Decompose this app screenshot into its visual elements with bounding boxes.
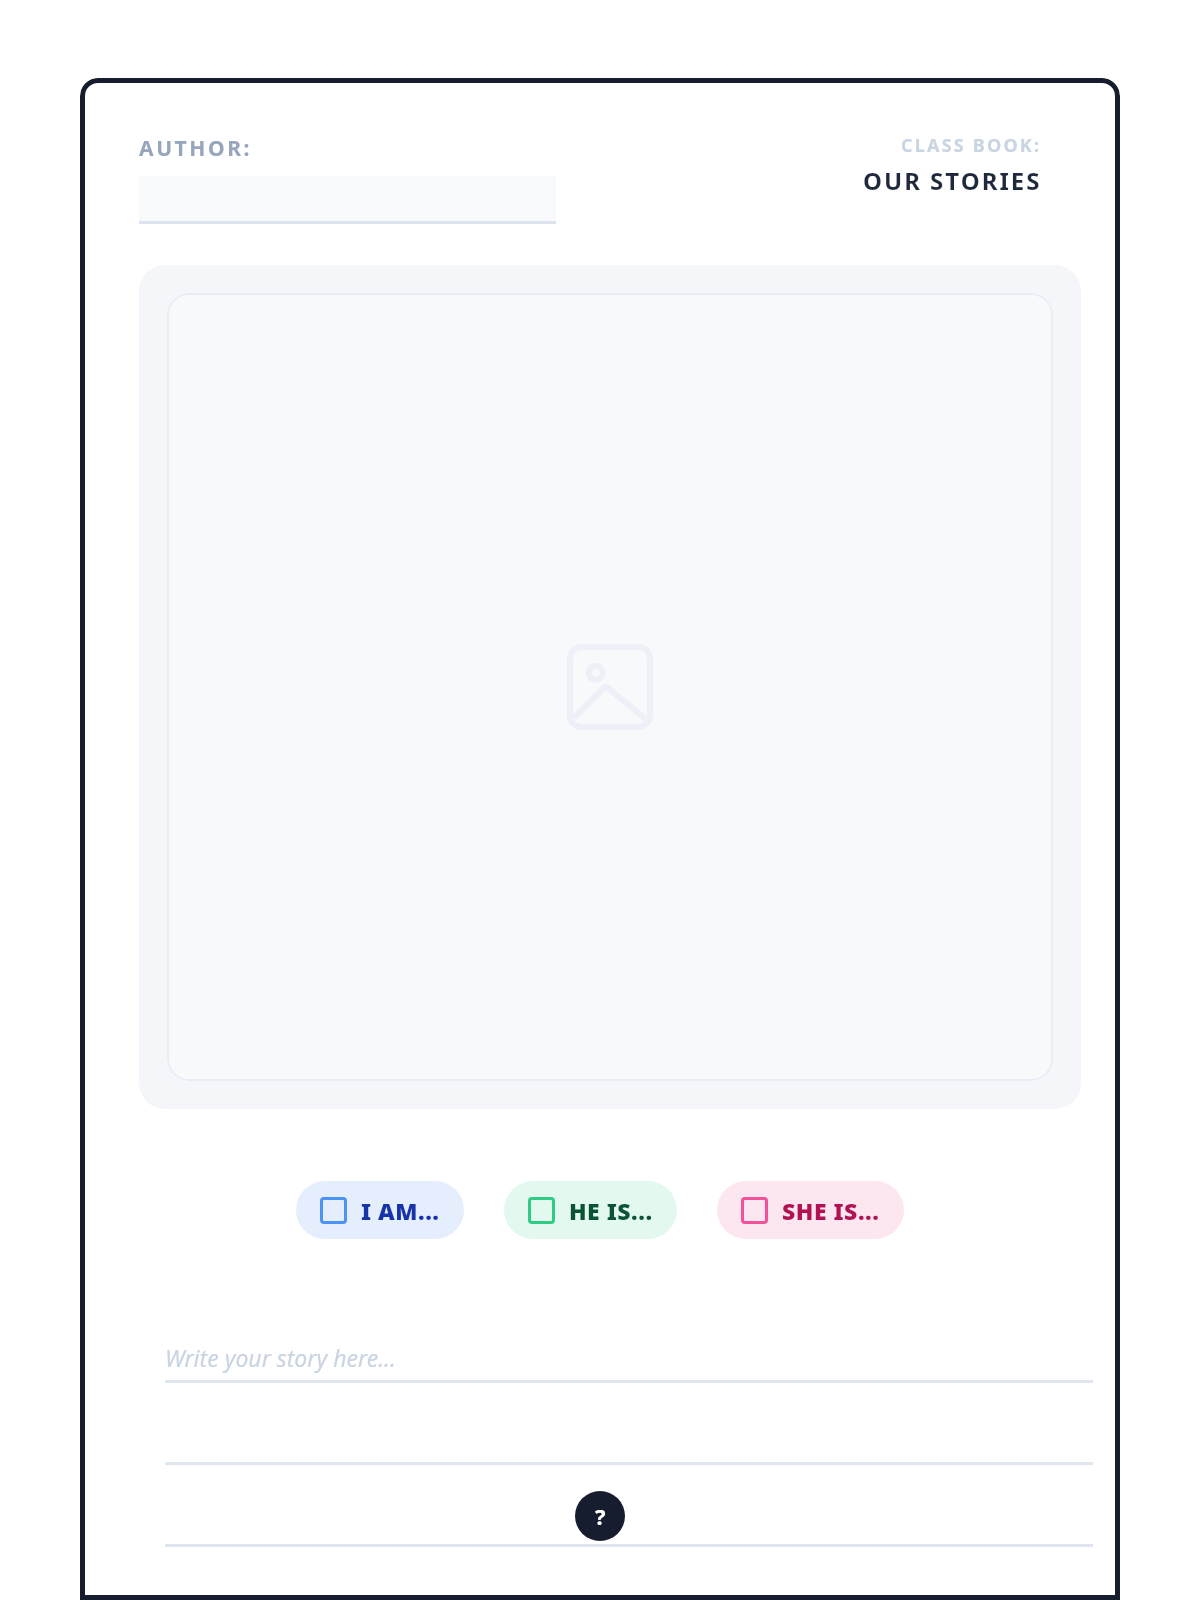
staticText: CLASS BOOK: <box>901 133 1042 158</box>
staticText: Write your story here... <box>165 1342 396 1373</box>
button[interactable] <box>165 1383 1093 1465</box>
button[interactable] <box>165 1465 1093 1547</box>
staticText: HE IS... <box>569 1195 653 1226</box>
staticText: AUTHOR: <box>139 134 253 163</box>
staticText: ? <box>595 1501 606 1531</box>
button[interactable]: I AM... <box>296 1181 464 1239</box>
staticText: I AM... <box>361 1195 440 1226</box>
staticText: OUR STORIES <box>863 164 1042 197</box>
button[interactable]: Write your story here... <box>165 1301 1093 1383</box>
staticText: SHE IS... <box>782 1195 880 1226</box>
button[interactable]: Help <box>575 1491 625 1541</box>
button[interactable] <box>139 176 556 224</box>
button[interactable]: HE IS... <box>504 1181 677 1239</box>
button[interactable]: SHE IS... <box>717 1181 904 1239</box>
